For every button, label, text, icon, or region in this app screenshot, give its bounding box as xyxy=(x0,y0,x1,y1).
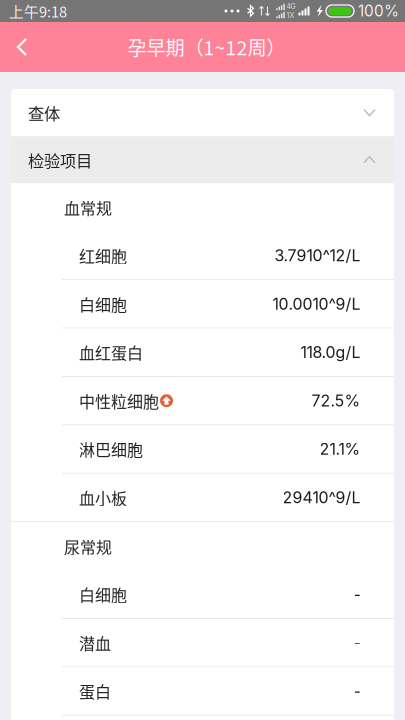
staticText: 白细胞 xyxy=(79,583,127,606)
button[interactable]: 中性粒细胞 xyxy=(11,377,394,425)
button[interactable]: 潜血 xyxy=(11,619,394,667)
staticText: 118.0g/L xyxy=(300,343,360,362)
staticText: 上午9:18 xyxy=(9,0,67,22)
button[interactable]: 淋巴细胞 xyxy=(11,425,394,474)
staticText: 3.7910^12/L xyxy=(274,246,360,265)
staticText: 孕早期（1~12周） xyxy=(127,33,285,61)
staticText: 中性粒细胞 xyxy=(79,389,159,412)
staticText: - xyxy=(353,633,360,652)
button[interactable]: 白细胞 xyxy=(11,571,394,619)
button[interactable]: 查体 xyxy=(11,89,394,136)
staticText: 血红蛋白 xyxy=(79,341,143,364)
staticText: 血小板 xyxy=(79,486,127,509)
staticText: 血常规 xyxy=(64,196,112,219)
staticText: 淋巴细胞 xyxy=(79,437,143,461)
staticText: 72.5% xyxy=(311,391,360,410)
button[interactable]: 红细胞 xyxy=(11,232,394,280)
staticText: 21.1% xyxy=(319,439,360,459)
button[interactable]: 白细胞 xyxy=(11,280,394,329)
staticText: 白细胞 xyxy=(79,292,127,315)
staticText: - xyxy=(353,681,360,701)
button[interactable]: 血红蛋白 xyxy=(11,329,394,377)
button[interactable]: 蛋白 xyxy=(11,667,394,716)
staticText: - xyxy=(353,585,360,604)
staticText: 10.0010^9/L xyxy=(272,294,360,313)
staticText: 潜血 xyxy=(79,631,111,654)
staticText: 尿常规 xyxy=(64,535,112,558)
staticText: 红细胞 xyxy=(79,244,127,267)
button[interactable]: 血小板 xyxy=(11,474,394,522)
staticText: 检验项目 xyxy=(28,148,92,172)
button[interactable]: 返回 xyxy=(0,22,44,72)
staticText: 29410^9/L xyxy=(282,488,360,507)
staticText: 100% xyxy=(358,2,399,20)
staticText: 蛋白 xyxy=(79,679,111,703)
staticText: 查体 xyxy=(28,101,60,124)
button[interactable]: 检验项目 xyxy=(11,136,394,183)
staticText: 1X xyxy=(286,11,294,20)
staticText: 4G xyxy=(286,2,295,11)
